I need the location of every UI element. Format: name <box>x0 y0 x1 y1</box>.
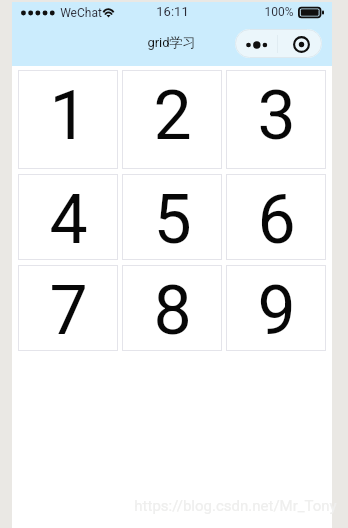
staticText: 8 <box>153 271 192 351</box>
staticText: 9 <box>257 271 296 351</box>
button[interactable]: 4 <box>18 174 118 260</box>
button[interactable]: 1 <box>18 70 118 169</box>
staticText: 5 <box>153 180 192 260</box>
staticText: 6 <box>257 180 296 260</box>
button[interactable]: 2 <box>122 70 222 169</box>
staticText: grid学习 <box>147 34 196 50</box>
staticText: https://blog.csdn.net/Mr_Tony <box>134 497 337 515</box>
button[interactable]: Close mini program <box>279 29 322 58</box>
button[interactable]: 9 <box>226 265 326 351</box>
button[interactable]: 5 <box>122 174 222 260</box>
staticText: 2 <box>153 76 192 156</box>
staticText: 4 <box>49 180 88 260</box>
button[interactable]: 8 <box>122 265 222 351</box>
button[interactable]: 7 <box>18 265 118 351</box>
staticText: 16:11 <box>156 4 189 19</box>
staticText: 100% <box>264 5 294 19</box>
button[interactable]: 6 <box>226 174 326 260</box>
staticText: WeChat <box>60 6 102 20</box>
staticText: 3 <box>257 76 296 156</box>
button[interactable]: 3 <box>226 70 326 169</box>
button[interactable]: More options <box>235 29 278 58</box>
staticText: 1 <box>49 76 88 156</box>
staticText: 7 <box>49 271 88 351</box>
